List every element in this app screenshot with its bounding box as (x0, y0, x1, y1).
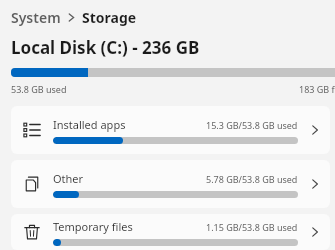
button[interactable]: Installed apps (11, 106, 330, 154)
staticText: Storage (82, 8, 137, 27)
button[interactable]: System (11, 8, 61, 27)
staticText: 183 GB free (299, 83, 335, 95)
other: Open Other details (306, 175, 324, 193)
staticText: Other (53, 171, 84, 186)
staticText: Local Disk (C:) - 236 GB (11, 36, 200, 59)
staticText: 15.3 GB/53.8 GB used (206, 119, 298, 131)
other: Open Installed apps details (306, 121, 324, 139)
staticText: System (11, 8, 61, 27)
staticText: Temporary files (53, 219, 133, 234)
staticText: 53.8 GB used (11, 83, 67, 95)
staticText: Installed apps (53, 117, 126, 132)
button[interactable]: Other (11, 160, 330, 208)
other: Open Temporary files details (306, 223, 324, 241)
button[interactable]: Temporary files (11, 214, 330, 250)
staticText: 1.15 GB/53.8 GB used (206, 221, 298, 233)
staticText: 5.78 GB/53.8 GB used (206, 173, 298, 185)
